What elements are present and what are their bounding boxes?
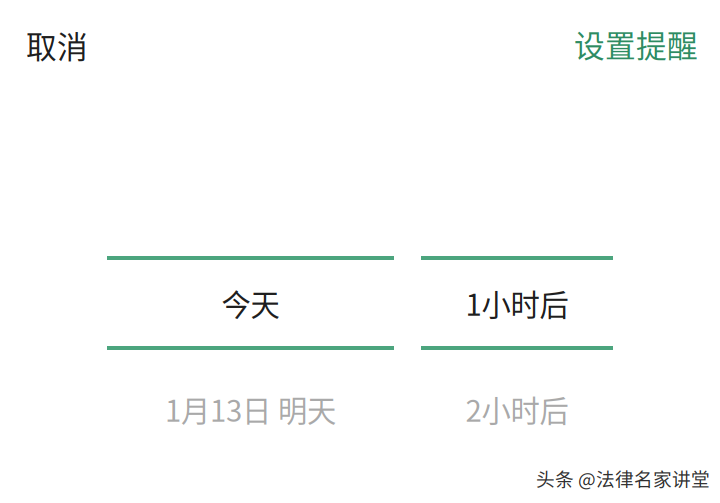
staticText: 1小时后 (465, 282, 568, 324)
staticText: 头条 @法律名家讲堂 (536, 464, 710, 491)
staticText: 今天 (221, 282, 279, 324)
staticText: 2小时后 (465, 388, 568, 430)
button[interactable]: 2小时后 (421, 366, 613, 452)
button[interactable]: 取消 (14, 13, 100, 77)
button[interactable]: 今天 (107, 260, 394, 346)
staticText: 取消 (26, 23, 88, 67)
button[interactable]: 设置提醒 (562, 12, 710, 76)
button[interactable]: 1小时后 (421, 260, 613, 346)
button[interactable]: 1月13日 明天 (107, 366, 394, 452)
staticText: 1月13日 明天 (165, 388, 336, 430)
staticText: 设置提醒 (574, 22, 698, 66)
